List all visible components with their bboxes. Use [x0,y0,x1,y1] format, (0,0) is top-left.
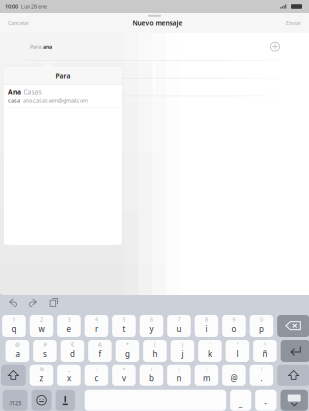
button[interactable]: Ocultar teclado [280,390,308,411]
button[interactable]: Cancelar [0,13,35,33]
staticText: ) [181,341,183,348]
button[interactable]: 2 [30,315,53,337]
staticText: .?123 [9,400,21,407]
staticText: Para: [30,43,43,50]
staticText: 9 [232,316,235,323]
staticText: + [263,341,266,348]
staticText: u [176,324,181,334]
button[interactable]: ! [250,365,273,386]
button[interactable]: , [222,365,246,386]
button[interactable]: Emoji [31,390,52,411]
button[interactable]: = [112,365,136,386]
button[interactable]: 7 [167,315,191,337]
staticText: _ [239,398,243,408]
button[interactable]: Mayúsculas derecha [277,365,309,386]
staticText: 8 [205,316,208,323]
button[interactable]: Dictado [56,390,75,411]
button[interactable]: 8 [195,315,218,337]
staticText: : [206,366,207,373]
staticText: @ [230,373,237,383]
button[interactable]: € [61,340,84,362]
button[interactable] [255,390,276,411]
staticText: k [208,349,212,359]
staticText: c [94,373,98,383]
button[interactable]: ) [171,340,194,362]
staticText: Casas [23,88,41,96]
button[interactable]: : [195,365,218,386]
staticText: e [66,324,71,334]
button[interactable]: # [33,340,57,362]
staticText: q [11,324,16,334]
staticText: f [98,349,101,359]
button[interactable]: 0 [250,315,273,337]
button[interactable]: " [226,340,249,362]
staticText: 0 [260,316,263,323]
staticText: Enviar [286,19,301,27]
button[interactable]: Retorno [281,340,309,362]
button[interactable]: * [116,340,139,362]
staticText: y [149,324,153,334]
staticText: 6 [150,316,153,323]
staticText: ( [154,341,156,348]
staticText: Para [55,72,70,80]
staticText: n [176,373,181,383]
staticText: @ [15,341,20,348]
button[interactable]: 6 [140,315,163,337]
button[interactable]: 5 [112,315,136,337]
button[interactable]: & [88,340,112,362]
staticText: ' [209,341,210,348]
button[interactable] [230,390,251,411]
button[interactable]: Retroceso [277,315,309,337]
staticText: ana.casas.wm@gmail.com [23,97,88,104]
button[interactable]: Enviar [280,13,309,33]
button[interactable]: ' [198,340,222,362]
button[interactable]: % [30,365,53,386]
button[interactable]: Pegar [44,293,65,313]
button[interactable]: Ana [4,85,122,107]
staticText: ; [178,366,179,373]
staticText: # [43,341,46,348]
staticText: 3 [67,316,70,323]
button[interactable]: 3 [57,315,81,337]
staticText: casa [8,97,20,104]
button[interactable]: Rehacer [23,293,44,313]
staticText: Cancelar [8,19,29,27]
staticText: - [264,398,267,408]
staticText: r [95,324,98,334]
staticText: , [233,366,234,373]
staticText: / [150,366,152,373]
staticText: a [15,349,19,359]
staticText: Ana [8,88,21,96]
staticText: w [38,324,44,334]
button[interactable]: 9 [222,315,246,337]
staticText: z [39,373,43,383]
button[interactable] [85,390,226,411]
staticText: b [149,373,154,383]
staticText: h [152,349,157,359]
staticText: _ [68,366,70,373]
staticText: d [70,349,75,359]
staticText: Nuevo mensaje [132,19,182,27]
staticText: 7 [177,316,180,323]
button[interactable] [3,390,27,411]
staticText: g [125,349,130,359]
button[interactable]: _ [57,365,81,386]
button[interactable]: Añadir contacto [268,40,282,54]
button[interactable]: / [140,365,163,386]
button[interactable]: @ [6,340,29,362]
button[interactable]: Mayúsculas izquierda [1,365,26,386]
staticText: & [98,341,102,348]
staticText: i [205,324,207,334]
button[interactable]: + [253,340,277,362]
staticText: p [259,324,264,334]
staticText: m [203,373,210,383]
button[interactable]: ; [167,365,191,386]
button[interactable]: - [85,365,108,386]
button[interactable]: 1 [2,315,26,337]
button[interactable]: 4 [85,315,108,337]
button[interactable]: ( [143,340,167,362]
staticText: s [43,349,47,359]
staticText: 5 [122,316,125,323]
button[interactable]: Deshacer [2,293,23,313]
staticText: 4 [95,316,98,323]
